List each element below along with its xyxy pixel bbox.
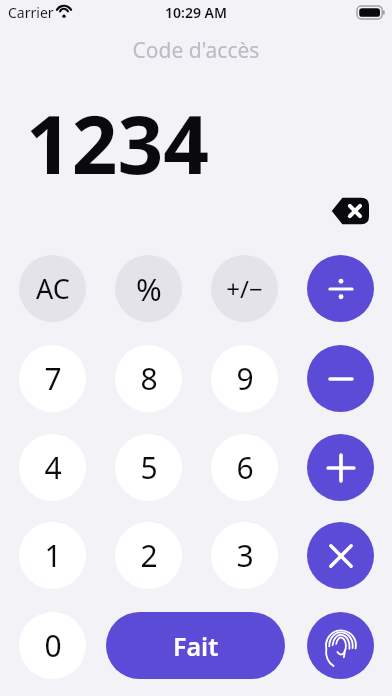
button[interactable]: +/− (211, 255, 278, 322)
button[interactable]: 3 (211, 522, 278, 589)
staticText: +/− (226, 272, 263, 305)
staticText: Fait (173, 629, 219, 663)
staticText: 10:29 AM (0, 3, 392, 22)
button[interactable]: 4 (19, 434, 86, 501)
button[interactable]: 8 (115, 345, 182, 412)
button[interactable]: % (115, 255, 182, 322)
staticText: 3 (236, 535, 254, 576)
button[interactable]: Minus (307, 345, 374, 412)
button[interactable]: Plus (307, 434, 374, 501)
staticText: Code d'accès (0, 36, 392, 65)
staticText: 2 (140, 535, 158, 576)
button[interactable]: 9 (211, 345, 278, 412)
button[interactable]: 2 (115, 522, 182, 589)
button[interactable]: 1 (19, 522, 86, 589)
staticText: 7 (44, 358, 62, 399)
staticText: 0 (44, 625, 62, 666)
staticText: 5 (140, 447, 158, 488)
staticText: 1234 (26, 88, 210, 197)
button[interactable]: AC (19, 255, 86, 322)
staticText: 1 (44, 535, 62, 576)
staticText: 9 (236, 358, 254, 399)
staticText: % (136, 268, 162, 310)
button[interactable]: Multiply (307, 522, 374, 589)
button[interactable]: 6 (211, 434, 278, 501)
button[interactable]: 0 (19, 612, 86, 679)
button[interactable]: Backspace (330, 193, 370, 229)
button[interactable]: 7 (19, 345, 86, 412)
button[interactable]: 5 (115, 434, 182, 501)
button[interactable]: Fingerprint unlock (307, 612, 374, 679)
staticText: 4 (44, 447, 62, 488)
staticText: 6 (236, 447, 254, 488)
staticText: Carrier (8, 3, 54, 22)
button[interactable]: Divide (307, 255, 374, 322)
staticText: AC (36, 270, 70, 307)
button[interactable]: Fait (106, 612, 285, 679)
staticText: 8 (140, 358, 158, 399)
